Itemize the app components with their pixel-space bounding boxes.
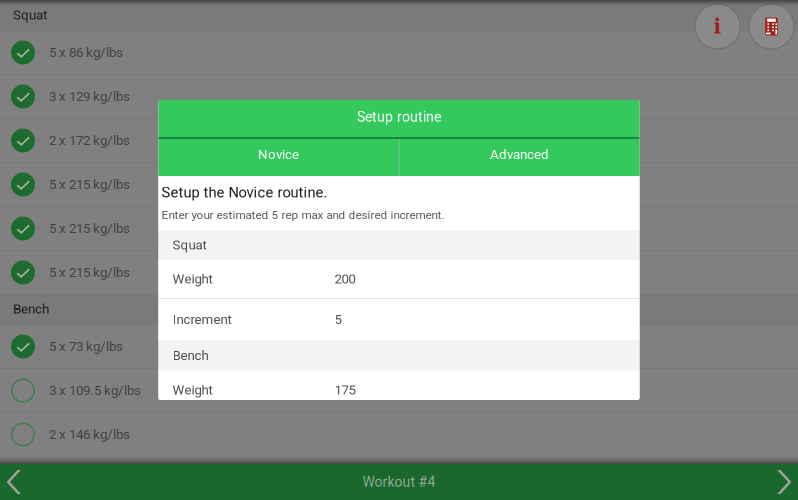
staticText: 175 xyxy=(334,382,355,398)
button[interactable]: Advanced xyxy=(399,139,639,176)
staticText: 2 x 172 kg/lbs xyxy=(49,133,130,148)
staticText: Squat xyxy=(172,237,206,253)
button[interactable]: 3 x 129 kg/lbs xyxy=(0,75,798,118)
button[interactable]: 5 x 215 kg/lbs xyxy=(0,251,798,294)
button[interactable]: 2 x 172 kg/lbs xyxy=(0,119,798,162)
staticText: Bench xyxy=(13,301,49,317)
staticText: Setup the Novice routine. xyxy=(161,184,327,201)
staticText: 5 x 86 kg/lbs xyxy=(49,45,123,60)
staticText: 5 x 215 kg/lbs xyxy=(49,265,130,280)
button[interactable]: Weight xyxy=(158,371,639,409)
staticText: 3 x 109.5 kg/lbs xyxy=(49,383,141,398)
staticText: Bench xyxy=(172,348,208,363)
button[interactable]: 5 x 215 kg/lbs xyxy=(0,207,798,250)
staticText: 3 x 129 kg/lbs xyxy=(49,89,130,104)
staticText: 2 x 146 kg/lbs xyxy=(49,427,130,442)
staticText: 5 xyxy=(334,312,341,327)
staticText: Novice xyxy=(258,147,299,162)
staticText: Advanced xyxy=(490,147,549,162)
staticText: i xyxy=(713,15,721,38)
button[interactable]: 3 x 109.5 kg/lbs xyxy=(0,369,798,412)
staticText: Workout #4 xyxy=(362,474,435,490)
button[interactable]: 5 x 73 kg/lbs xyxy=(0,325,798,368)
staticText: 200 xyxy=(334,271,355,287)
staticText: Increment xyxy=(172,312,231,327)
button[interactable]: 5 x 86 kg/lbs xyxy=(0,31,798,74)
staticText: 5 x 215 kg/lbs xyxy=(49,177,130,192)
button[interactable]: Novice xyxy=(158,139,398,176)
staticText: 5 x 73 kg/lbs xyxy=(49,339,123,354)
button[interactable]: Information xyxy=(695,4,740,49)
staticText: 5 x 215 kg/lbs xyxy=(49,221,130,236)
staticText: Weight xyxy=(172,382,212,398)
button[interactable]: Weight xyxy=(158,260,639,298)
button[interactable]: 5 x 215 kg/lbs xyxy=(0,163,798,206)
button[interactable]: Plate calculator xyxy=(749,4,794,49)
staticText: Squat xyxy=(13,7,47,23)
button[interactable]: Next workout xyxy=(762,464,798,500)
staticText: Weight xyxy=(172,271,212,287)
button[interactable]: Increment xyxy=(158,299,639,340)
button[interactable]: 2 x 146 kg/lbs xyxy=(0,413,798,456)
button[interactable]: Previous workout xyxy=(0,464,36,500)
staticText: Enter your estimated 5 rep max and desir… xyxy=(161,208,444,222)
staticText: Setup routine xyxy=(357,109,441,125)
